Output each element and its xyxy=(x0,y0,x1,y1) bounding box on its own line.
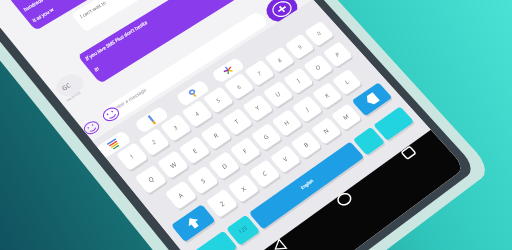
button[interactable]: SMS Plus keyboard screenshot xyxy=(0,0,512,250)
